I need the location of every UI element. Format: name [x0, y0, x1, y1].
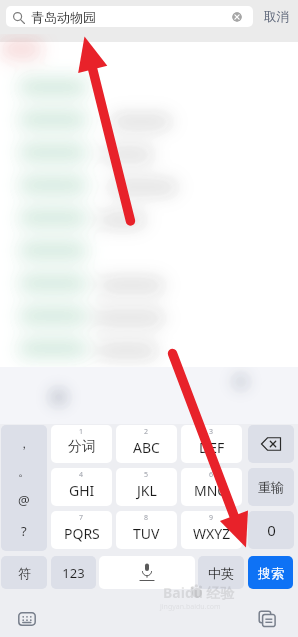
staticText: ? — [21, 522, 27, 540]
staticText: JKL — [137, 481, 157, 500]
button[interactable]: 中英 — [198, 556, 244, 589]
staticText: TUV — [133, 524, 160, 543]
staticText: MNO — [194, 481, 229, 500]
staticText: 青岛动物园 — [31, 9, 96, 25]
button[interactable]: 123 — [51, 556, 96, 589]
button[interactable]: 重输 — [248, 468, 294, 506]
button[interactable]: 7 — [51, 511, 112, 549]
button[interactable]: 5 — [116, 468, 177, 506]
staticText: 取消 — [264, 9, 289, 25]
staticText: jingyan.baidu.com — [160, 602, 221, 612]
staticText: 搜索 — [258, 565, 284, 581]
button[interactable]: 青岛动物园 — [6, 6, 253, 27]
button[interactable]: 1 — [51, 425, 112, 463]
staticText: PQRS — [64, 524, 100, 543]
staticText: 符 — [18, 565, 31, 581]
staticText: 重输 — [258, 479, 284, 495]
button[interactable]: 0 — [248, 511, 294, 549]
button[interactable]: Clear — [232, 12, 242, 22]
staticText: 分词 — [68, 438, 96, 456]
staticText: 2 — [144, 427, 149, 437]
staticText: 中英 — [208, 565, 234, 581]
staticText: 0 — [267, 520, 276, 540]
button[interactable] — [99, 556, 195, 589]
button[interactable]: 8 — [116, 511, 177, 549]
staticText: 4 — [79, 470, 84, 480]
button[interactable]: Copy — [258, 610, 278, 628]
button[interactable]: 2 — [116, 425, 177, 463]
staticText: DEF — [199, 438, 225, 457]
button[interactable]: ， — [1, 425, 47, 551]
button[interactable]: 取消 — [259, 6, 293, 27]
staticText: GHI — [69, 481, 95, 500]
staticText: Baidu 经验 — [163, 583, 235, 602]
staticText: 3 — [209, 427, 214, 437]
staticText: 6 — [209, 470, 214, 480]
staticText: ， — [18, 436, 30, 451]
button[interactable]: 搜索 — [248, 556, 293, 589]
staticText: 123 — [62, 564, 85, 582]
staticText: 5 — [144, 470, 149, 480]
staticText: @ — [18, 491, 30, 509]
button[interactable]: Backspace — [248, 425, 294, 463]
staticText: WXYZ — [193, 524, 231, 543]
button[interactable]: Keyboard layout — [18, 612, 36, 626]
staticText: ABC — [133, 438, 160, 457]
button[interactable]: 6 — [181, 468, 242, 506]
staticText: 1 — [79, 427, 84, 437]
button[interactable]: 符 — [1, 556, 47, 589]
staticText: 。 — [18, 464, 30, 479]
staticText: 8 — [144, 513, 149, 523]
button[interactable]: 4 — [51, 468, 112, 506]
button[interactable]: 3 — [181, 425, 242, 463]
staticText: 9 — [209, 513, 214, 523]
button[interactable]: 9 — [181, 511, 242, 549]
staticText: 7 — [79, 513, 84, 523]
